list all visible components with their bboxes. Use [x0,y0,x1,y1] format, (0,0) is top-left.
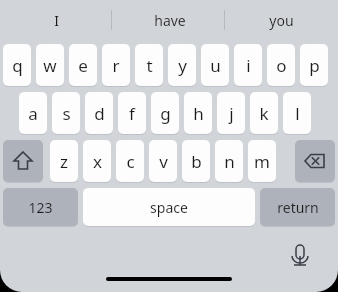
staticText: space [150,198,188,217]
staticText: s [62,102,71,125]
staticText: I [54,11,59,30]
staticText: y [178,54,187,77]
staticText: f [129,102,135,125]
button[interactable]: j [217,92,245,134]
button[interactable]: p [300,44,328,86]
staticText: o [276,54,287,77]
staticText: you [269,11,294,30]
staticText: u [210,54,221,77]
staticText: q [12,54,23,77]
staticText: c [126,150,135,173]
staticText: g [160,102,171,125]
button[interactable]: h [184,92,212,134]
staticText: z [60,150,68,173]
button[interactable]: Dictate [282,238,318,274]
button[interactable]: b [182,140,210,182]
button[interactable]: 123 [3,188,78,226]
button[interactable]: f [118,92,146,134]
staticText: p [309,54,320,77]
button[interactable]: k [250,92,278,134]
button[interactable]: e [69,44,97,86]
button[interactable]: Shift [3,140,43,182]
button[interactable]: q [3,44,31,86]
button[interactable]: you [225,0,338,40]
staticText: m [254,150,270,173]
button[interactable]: v [149,140,177,182]
staticText: k [259,102,269,125]
button[interactable]: x [83,140,111,182]
staticText: a [28,102,38,125]
button[interactable]: i [234,44,262,86]
staticText: d [94,102,105,125]
staticText: e [78,54,88,77]
button[interactable]: l [283,92,311,134]
staticText: have [154,11,186,30]
button[interactable]: n [215,140,243,182]
staticText: b [191,150,202,173]
button[interactable]: d [85,92,113,134]
staticText: return [277,198,319,217]
button[interactable]: Backspace [295,140,335,182]
staticText: t [146,54,153,77]
staticText: h [193,102,204,125]
staticText: j [229,102,234,125]
button[interactable]: o [267,44,295,86]
button[interactable]: w [36,44,64,86]
button[interactable]: space [83,188,255,226]
staticText: 123 [28,198,53,217]
button[interactable]: a [19,92,47,134]
button[interactable]: u [201,44,229,86]
button[interactable]: r [102,44,130,86]
button[interactable]: m [248,140,276,182]
button[interactable]: s [52,92,80,134]
staticText: l [295,102,300,125]
button[interactable]: return [260,188,335,226]
staticText: x [93,150,102,173]
staticText: w [43,54,57,77]
button[interactable]: z [50,140,78,182]
staticText: r [112,54,120,77]
button[interactable]: g [151,92,179,134]
staticText: n [224,150,235,173]
staticText: v [159,150,168,173]
button[interactable]: have [113,0,226,40]
button[interactable]: c [116,140,144,182]
button[interactable]: I [0,0,113,40]
button[interactable]: t [135,44,163,86]
staticText: i [246,54,251,77]
button[interactable]: y [168,44,196,86]
